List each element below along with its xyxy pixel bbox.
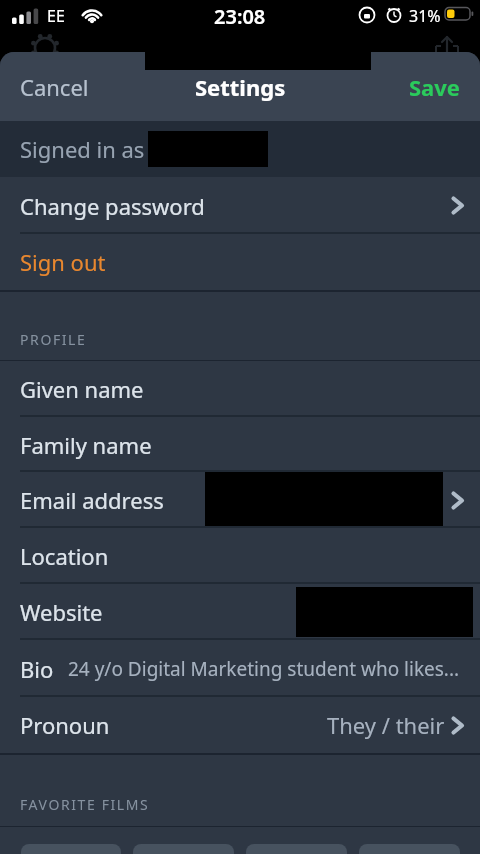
staticText: 31%	[409, 5, 441, 27]
staticText: 23:08	[214, 3, 266, 30]
button[interactable]	[359, 844, 460, 854]
staticText: Signed in as	[20, 134, 145, 164]
button[interactable]: Email address	[0, 472, 480, 528]
staticText: PROFILE	[20, 330, 87, 349]
button[interactable]: Change password	[0, 177, 480, 234]
button[interactable]: Cancel	[20, 72, 89, 102]
button[interactable]	[246, 844, 347, 854]
staticText: Sign out	[20, 247, 106, 277]
staticText: Change password	[20, 191, 205, 221]
button[interactable]: Bio	[0, 640, 480, 697]
button[interactable]: Website	[0, 584, 480, 640]
button[interactable]: Given name	[0, 361, 480, 417]
staticText: Location	[20, 541, 109, 571]
staticText: Bio	[20, 654, 54, 684]
button[interactable]: Sign out	[0, 234, 480, 290]
staticText: Family name	[20, 430, 152, 460]
staticText: Given name	[20, 374, 144, 404]
staticText: Email address	[20, 485, 164, 515]
staticText: 24 y/o Digital Marketing student who lik…	[68, 656, 460, 682]
button[interactable]	[21, 844, 121, 854]
button[interactable]: Save	[409, 72, 460, 102]
button[interactable]: Family name	[0, 417, 480, 472]
staticText: FAVORITE FILMS	[20, 795, 150, 814]
staticText: Settings	[195, 72, 286, 102]
staticText: EE	[47, 5, 65, 27]
button[interactable]: Pronoun	[0, 697, 480, 753]
button[interactable]	[133, 844, 234, 854]
staticText: They / their	[327, 710, 445, 740]
button[interactable]: Signed in as	[0, 121, 480, 177]
staticText: Pronoun	[20, 710, 110, 740]
staticText: Website	[20, 597, 103, 627]
button[interactable]: Location	[0, 528, 480, 584]
